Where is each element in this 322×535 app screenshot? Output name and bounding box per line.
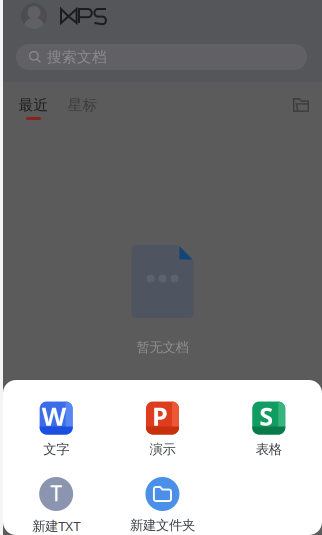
staticText: 搜索文档: [47, 48, 107, 66]
staticText: T: [50, 479, 62, 507]
button[interactable]: 新建文件夹: [109, 477, 216, 535]
button[interactable]: S: [216, 401, 322, 468]
staticText: 新建文件夹: [130, 517, 195, 533]
staticText: 星标: [67, 96, 97, 114]
button[interactable]: 搜索文档: [16, 44, 307, 70]
button[interactable]: 最近: [9, 96, 58, 124]
staticText: 最近: [18, 96, 48, 114]
button[interactable]: 星标: [58, 96, 107, 124]
staticText: 暂无文档: [136, 339, 188, 355]
button[interactable]: T: [3, 477, 109, 535]
staticText: 表格: [256, 441, 282, 457]
button[interactable]: Account: [21, 3, 47, 29]
button[interactable]: W: [3, 401, 109, 468]
staticText: 演示: [149, 441, 175, 457]
button[interactable]: Folders: [287, 91, 315, 119]
button[interactable]: P: [109, 401, 216, 468]
staticText: S: [259, 399, 273, 433]
staticText: P: [152, 399, 168, 433]
staticText: W: [42, 399, 66, 433]
staticText: 文字: [43, 441, 69, 457]
staticText: 新建TXT: [32, 517, 80, 535]
